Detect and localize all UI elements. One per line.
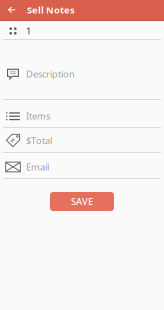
staticText: Description xyxy=(26,68,75,80)
staticText: SAVE xyxy=(71,195,93,208)
staticText: Items xyxy=(26,110,50,122)
staticText: 1 xyxy=(26,25,31,37)
staticText: Sell Notes xyxy=(27,4,75,16)
staticText: $Total xyxy=(26,134,52,147)
button[interactable]: SAVE xyxy=(50,192,114,211)
button[interactable]: Back xyxy=(3,0,20,19)
staticText: Email xyxy=(26,161,49,173)
